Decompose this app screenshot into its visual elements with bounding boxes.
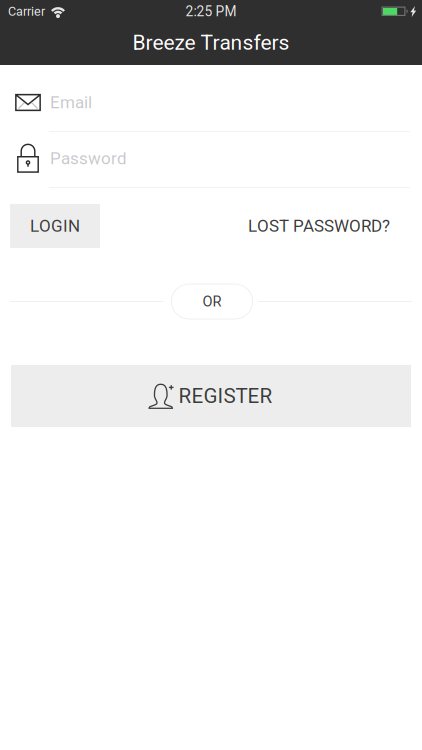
staticText: Breeze Transfers [132, 30, 289, 55]
staticText: Carrier [8, 4, 45, 19]
staticText: REGISTER [178, 384, 272, 408]
button[interactable]: LOGIN [10, 204, 100, 248]
staticText: 2:25 PM [185, 3, 236, 20]
button[interactable]: REGISTER [11, 365, 411, 427]
staticText: OR [202, 293, 221, 310]
staticText: Email [50, 92, 92, 112]
button[interactable]: LOST PASSWORD? [236, 204, 411, 248]
staticText: Password [50, 148, 127, 168]
staticText: LOST PASSWORD? [248, 216, 390, 236]
staticText: LOGIN [30, 216, 80, 236]
